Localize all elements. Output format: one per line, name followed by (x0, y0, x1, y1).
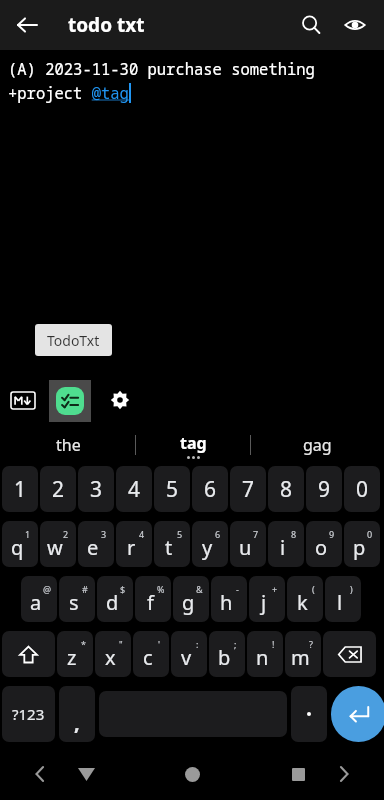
staticText: c (143, 644, 153, 671)
button[interactable]: tag (136, 425, 250, 465)
staticText: 5 (177, 528, 183, 540)
staticText: i (280, 534, 286, 561)
button[interactable]: z (57, 631, 93, 677)
staticText: 1 (14, 475, 27, 504)
staticText: TodoTxt (47, 331, 100, 350)
staticText: : (196, 638, 199, 650)
staticText: 3 (101, 528, 107, 540)
button[interactable]: 4 (116, 466, 152, 512)
button[interactable]: Hide keyboard (66, 754, 106, 794)
button[interactable]: Home (170, 752, 214, 796)
other: Backspace (323, 631, 376, 677)
staticText: 5 (166, 475, 179, 504)
button[interactable]: ?123 (2, 686, 55, 742)
button[interactable]: j (249, 576, 285, 622)
button[interactable]: h (211, 576, 247, 622)
button[interactable]: 0 (344, 466, 380, 512)
staticText: k (297, 589, 308, 616)
button[interactable]: Backspace (323, 631, 376, 677)
button[interactable]: r (116, 521, 152, 567)
staticText: 9 (329, 528, 335, 540)
staticText: v (181, 644, 192, 671)
staticText: 6 (215, 528, 221, 540)
staticText: todo txt (68, 12, 145, 38)
button[interactable]: w (40, 521, 76, 567)
staticText: f (147, 589, 154, 616)
button[interactable]: 9 (306, 466, 342, 512)
button[interactable]: Markdown (8, 385, 38, 415)
button[interactable]: 1 (2, 466, 38, 512)
staticText: w (47, 534, 63, 561)
button[interactable]: Back (4, 2, 50, 48)
staticText: ! (272, 638, 275, 650)
button[interactable]: y (192, 521, 228, 567)
button[interactable]: Shift (2, 631, 55, 677)
button[interactable]: f (135, 576, 171, 622)
staticText: 1 (25, 528, 31, 540)
button[interactable]: gag (251, 425, 384, 465)
button[interactable]: Previous (20, 754, 60, 794)
staticText: o (315, 534, 328, 561)
button[interactable]: c (133, 631, 169, 677)
button[interactable]: TodoTxt (49, 380, 91, 422)
staticText: d (106, 589, 119, 616)
button[interactable]: the (0, 425, 136, 465)
staticText: 8 (280, 475, 293, 504)
staticText: p (353, 534, 366, 561)
button[interactable]: g (173, 576, 209, 622)
button[interactable]: Settings (106, 386, 134, 414)
button[interactable]: o (306, 521, 342, 567)
button[interactable]: p (344, 521, 380, 567)
button[interactable]: d (97, 576, 133, 622)
staticText: ; (234, 638, 237, 650)
button[interactable]: a (21, 576, 57, 622)
staticText: gag (303, 434, 332, 456)
button[interactable]: x (95, 631, 131, 677)
button[interactable]: u (230, 521, 266, 567)
button[interactable]: s (59, 576, 95, 622)
button[interactable]: Recents (278, 754, 318, 794)
button[interactable]: 2 (40, 466, 76, 512)
button[interactable]: Enter (331, 686, 384, 742)
staticText: g (182, 589, 195, 616)
staticText: y (202, 534, 213, 561)
staticText: - (236, 583, 239, 595)
button[interactable]: Search (288, 2, 334, 48)
button[interactable]: , (59, 686, 95, 742)
button[interactable]: m (285, 631, 321, 677)
button[interactable]: i (268, 521, 304, 567)
staticText: l (337, 589, 343, 616)
staticText: , (74, 709, 80, 736)
staticText: tag (180, 432, 207, 454)
button[interactable]: l (325, 576, 361, 622)
button[interactable]: 3 (78, 466, 114, 512)
button[interactable]: e (78, 521, 114, 567)
button[interactable]: b (209, 631, 245, 677)
button[interactable]: 7 (230, 466, 266, 512)
button[interactable]: 5 (154, 466, 190, 512)
staticText: +project @tag (8, 82, 129, 103)
button[interactable]: 8 (268, 466, 304, 512)
staticText: + (272, 583, 278, 595)
staticText: & (196, 583, 203, 595)
button[interactable]: Preview (332, 2, 378, 48)
staticText: 4 (128, 475, 141, 504)
button[interactable]: k (287, 576, 323, 622)
button[interactable]: t (154, 521, 190, 567)
staticText: * (81, 638, 86, 650)
staticText: z (67, 644, 77, 671)
button[interactable] (291, 686, 327, 742)
staticText: r (127, 534, 136, 561)
staticText: q (11, 534, 24, 561)
staticText: 9 (318, 475, 331, 504)
staticText: t (165, 534, 173, 561)
button[interactable]: q (2, 521, 38, 567)
button[interactable]: n (247, 631, 283, 677)
staticText: ?123 (12, 704, 45, 724)
staticText: 7 (242, 475, 255, 504)
staticText: 3 (90, 475, 103, 504)
button[interactable]: Next (324, 754, 364, 794)
button[interactable]: v (171, 631, 207, 677)
button[interactable]: 6 (192, 466, 228, 512)
